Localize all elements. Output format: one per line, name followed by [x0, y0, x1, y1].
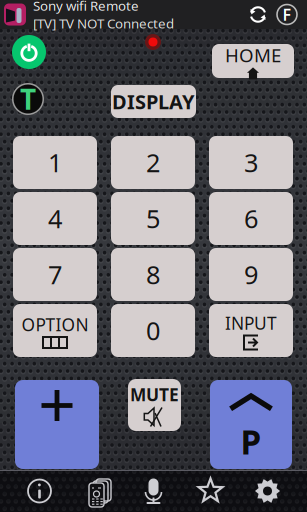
button[interactable]: 4	[13, 192, 97, 245]
button[interactable]: Remotes	[68, 470, 125, 512]
button[interactable]: Voice	[125, 470, 182, 512]
button[interactable]: DISPLAY	[111, 85, 196, 118]
button[interactable]: 9	[209, 248, 293, 301]
staticText: 2	[146, 146, 160, 179]
staticText: T	[20, 80, 36, 118]
button[interactable]: Volume up	[15, 380, 99, 469]
staticText: 5	[146, 202, 160, 235]
button[interactable]: MUTE	[128, 379, 181, 431]
staticText: MUTE	[130, 383, 179, 406]
staticText: OPTION	[21, 313, 88, 336]
staticText: 6	[244, 202, 258, 235]
button[interactable]: INPUT	[209, 304, 293, 357]
staticText: 0	[146, 314, 160, 347]
staticText: INPUT	[225, 311, 277, 334]
button[interactable]: Favourites	[182, 470, 239, 512]
staticText: DISPLAY	[112, 88, 195, 115]
staticText: 4	[48, 202, 62, 235]
button[interactable]: 1	[13, 136, 97, 189]
button[interactable]: 8	[111, 248, 195, 301]
button[interactable]: 5	[111, 192, 195, 245]
button[interactable]: 6	[209, 192, 293, 245]
staticText: 8	[146, 258, 160, 291]
button[interactable]: OPTION	[13, 304, 97, 357]
staticText: 9	[244, 258, 258, 291]
button[interactable]: HOME	[212, 44, 294, 78]
staticText: HOME	[225, 43, 281, 67]
button[interactable]: Favourites	[275, 2, 299, 26]
button[interactable]: Teletext	[10, 81, 46, 117]
button[interactable]: Power	[9, 32, 49, 72]
button[interactable]: 0	[111, 304, 195, 357]
staticText: Sony wifi Remote	[33, 0, 139, 14]
staticText: 3	[244, 146, 258, 179]
button[interactable]: Settings	[239, 470, 296, 512]
staticText: 7	[48, 258, 62, 291]
staticText: F	[282, 4, 291, 25]
button[interactable]: Refresh	[248, 4, 268, 24]
button[interactable]: 7	[13, 248, 97, 301]
staticText: 1	[48, 146, 62, 179]
button[interactable]: 3	[209, 136, 293, 189]
button[interactable]: Channel up	[210, 380, 292, 469]
button[interactable]: 2	[111, 136, 195, 189]
button[interactable]: Info	[11, 470, 68, 512]
staticText: [TV] TV NOT Connected	[33, 14, 174, 32]
staticText: P	[240, 419, 261, 464]
